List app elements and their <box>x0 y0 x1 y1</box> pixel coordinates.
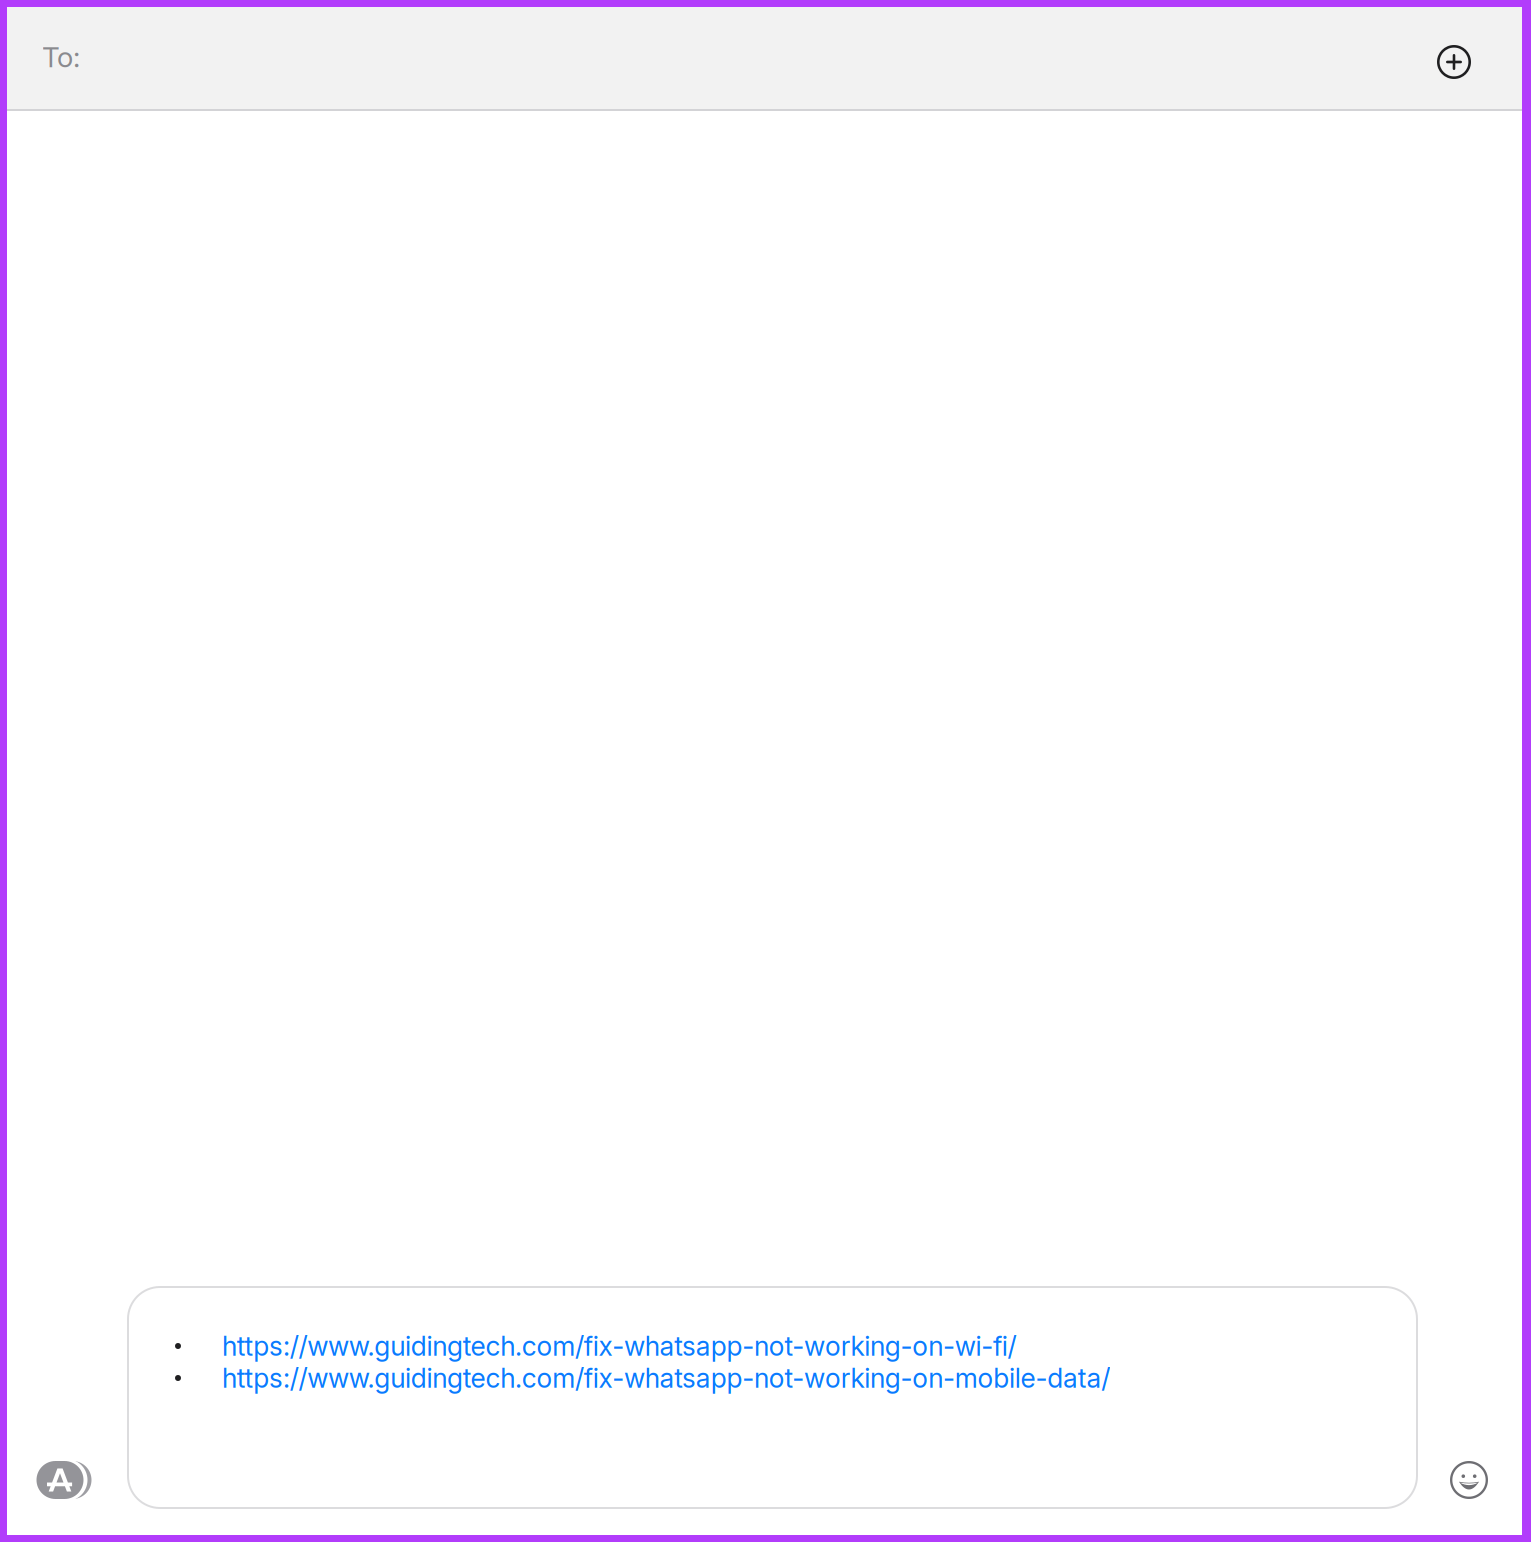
button[interactable]: App Store <box>20 1449 100 1511</box>
button[interactable]: Emoji <box>1440 1451 1498 1509</box>
staticText: https://www.guidingtech.com/fix-whatsapp… <box>222 1362 1110 1394</box>
staticText: To: <box>42 40 80 74</box>
button[interactable]: To: <box>42 7 1404 109</box>
button[interactable]: Add recipient <box>1404 7 1504 108</box>
button[interactable]: https://www.guidingtech.com/fix-whatsapp… <box>128 1287 1417 1508</box>
staticText: https://www.guidingtech.com/fix-whatsapp… <box>222 1330 1017 1362</box>
